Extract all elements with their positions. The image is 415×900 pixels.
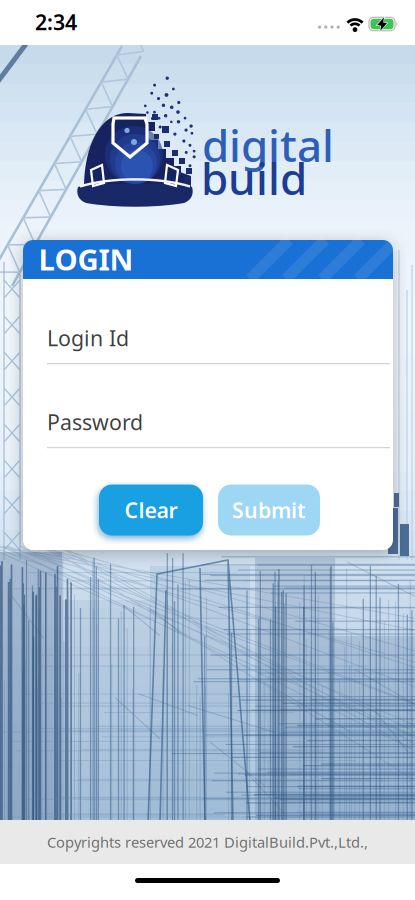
button[interactable]: Submit [218,484,320,535]
staticText: Login Id [47,324,129,352]
staticText: Copyrights reserved 2021 DigitalBuild.Pv… [47,832,368,852]
button[interactable]: Clear [99,484,203,535]
staticText: build [201,149,307,207]
staticText: Clear [124,496,177,524]
staticText: digital [202,116,334,174]
button[interactable]: Login Id [47,324,390,364]
staticText: 2:34 [35,8,77,36]
staticText: Submit [232,496,306,524]
staticText: LOGIN [38,239,133,278]
staticText: Password [47,408,143,436]
button[interactable]: Password [47,408,390,448]
